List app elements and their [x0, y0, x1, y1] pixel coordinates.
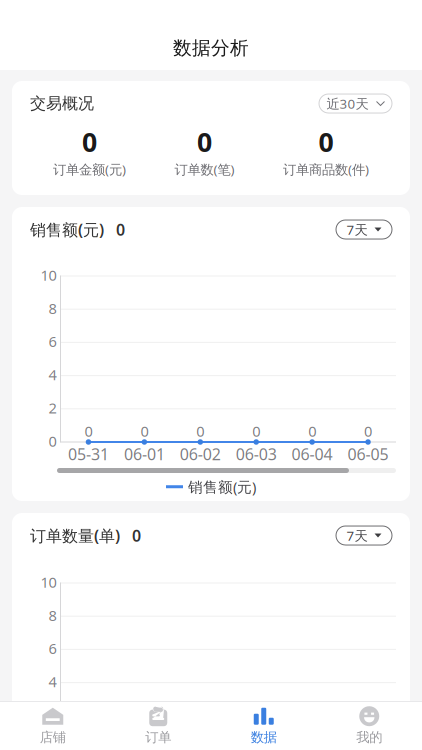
staticText: 数据分析 — [173, 36, 249, 59]
staticText: 0 — [48, 738, 56, 750]
button[interactable]: 7天 — [336, 220, 392, 239]
button[interactable]: 店铺 — [0, 702, 105, 750]
staticText: 0 — [318, 124, 333, 159]
staticText: 2 — [48, 398, 56, 418]
staticText: 订单金额(元) — [53, 160, 126, 178]
staticText: 0 — [308, 421, 316, 441]
staticText: 4 — [48, 672, 56, 691]
staticText: 7天 — [346, 527, 367, 544]
staticText: 订单数(笔) — [174, 160, 234, 178]
staticText: 8 — [48, 605, 56, 625]
staticText: 销售额(元) 0 — [30, 219, 125, 240]
staticText: 06-05 — [347, 443, 388, 465]
staticText: 06-01 — [124, 443, 165, 465]
staticText: 0 — [84, 421, 92, 441]
staticText: 销售额(元) — [188, 477, 256, 496]
staticText: 6 — [48, 332, 56, 351]
button[interactable]: 7天 — [336, 526, 392, 545]
staticText: 0 — [48, 431, 56, 451]
staticText: 6 — [48, 639, 56, 658]
staticText: 我的 — [356, 729, 382, 746]
staticText: 0 — [197, 124, 212, 159]
staticText: 10 — [40, 572, 56, 592]
staticText: 交易概况 — [30, 94, 94, 113]
staticText: 订单数量(单) 0 — [30, 525, 141, 546]
button[interactable]: 我的 — [316, 702, 422, 750]
staticText: 订单 — [145, 729, 171, 746]
staticText: 2 — [48, 705, 56, 725]
staticText: 店铺 — [40, 729, 66, 746]
staticText: 06-03 — [236, 443, 277, 465]
staticText: 0 — [252, 421, 260, 441]
staticText: 0 — [196, 421, 204, 441]
button[interactable]: 订单 — [105, 702, 211, 750]
staticText: 0 — [82, 124, 97, 159]
staticText: 06-02 — [180, 443, 221, 465]
staticText: 近30天 — [326, 95, 368, 112]
staticText: 7天 — [346, 221, 367, 238]
button[interactable]: 近30天 — [319, 94, 392, 113]
button[interactable]: 数据 — [211, 702, 316, 750]
staticText: 0 — [364, 421, 372, 441]
staticText: 8 — [48, 298, 56, 318]
staticText: 10 — [40, 265, 56, 285]
staticText: 数据 — [251, 729, 277, 746]
staticText: 05-31 — [68, 443, 109, 465]
staticText: 06-04 — [292, 443, 333, 465]
staticText: 0 — [140, 421, 148, 441]
staticText: 4 — [48, 365, 56, 384]
staticText: 订单商品数(件) — [283, 160, 369, 178]
